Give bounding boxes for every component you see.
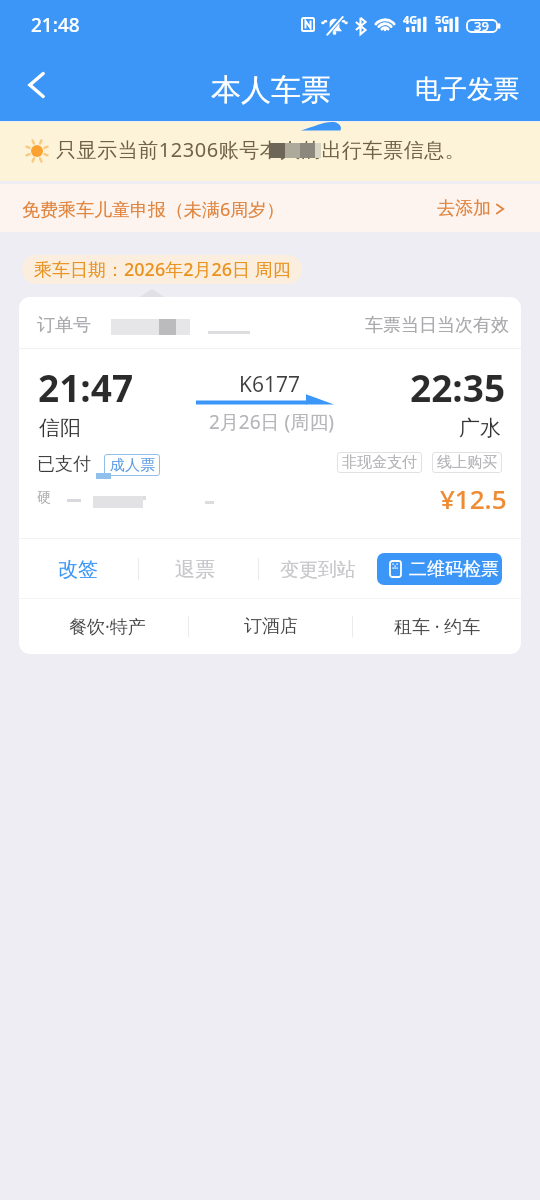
button[interactable]: 餐饮·特产 [19,599,188,654]
staticText: 39 [474,17,489,35]
staticText: 退票 [175,557,215,582]
button[interactable]: 变更到站 [270,550,366,590]
staticText: 乘车日期：2026年2月26日 周四 [34,257,291,282]
button[interactable]: 退票 [165,549,225,590]
staticText: 变更到站 [280,558,356,582]
staticText: 餐饮·特产 [69,614,146,639]
staticText: 本人车票 [211,71,331,109]
staticText: 21:48 [31,12,80,38]
staticText: 免费乘车儿童申报（未满6周岁） [22,197,285,222]
staticText: 车票当日当次有效 [365,314,509,337]
button[interactable]: 租车 · 约车 [353,599,521,654]
staticText: 电子发票 [415,73,519,106]
staticText: 二维码检票 [409,558,499,581]
staticText: 去添加 [437,197,491,220]
staticText: 4G [403,12,418,27]
staticText: 订酒店 [244,615,298,638]
staticText: K6177 [239,370,301,399]
button[interactable]: 二维码检票 [377,553,502,585]
staticText: 21:47 [38,362,134,412]
staticText: 信阳 [39,415,81,441]
staticText: 非现金支付 [342,453,417,472]
staticText: 只显示当前12306账号本人的出行车票信息。 [56,136,466,163]
staticText: 广水 [459,415,501,441]
button[interactable]: 改签 [48,549,108,590]
button[interactable]: 电子发票 [405,66,529,113]
staticText: 改签 [58,557,98,582]
staticText: 5G [435,12,450,27]
staticText: 已支付 [37,453,91,476]
staticText: 22:35 [410,362,506,412]
staticText: 线上购买 [437,453,497,472]
button[interactable]: 订酒店 [189,599,352,654]
staticText: 订单号 [37,314,91,337]
staticText: 硬 [37,489,51,507]
staticText: 2月26日 (周四) [209,409,334,435]
staticText: 成人票 [110,456,155,475]
staticText: ¥12.5 [440,481,507,516]
button[interactable]: 免费乘车儿童申报（未满6周岁） [0,184,540,232]
staticText: 租车 · 约车 [394,614,481,639]
button[interactable]: Back [12,61,60,109]
